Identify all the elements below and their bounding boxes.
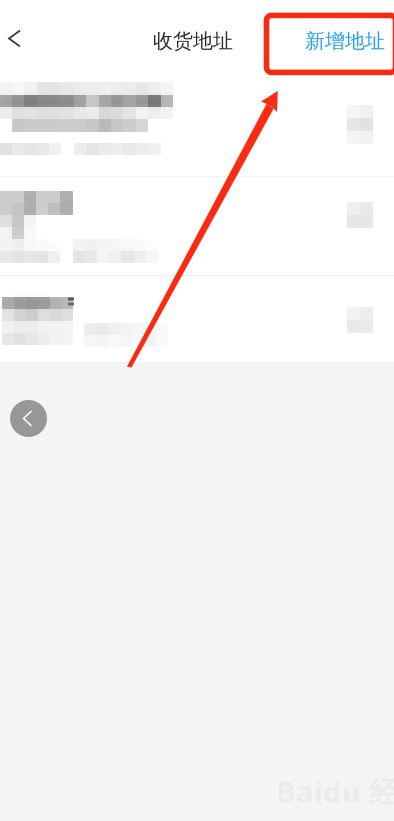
button[interactable] <box>0 276 394 362</box>
staticText: 收货地址 <box>153 29 233 53</box>
staticText: 新增地址 <box>305 29 385 53</box>
button[interactable] <box>0 82 394 176</box>
button[interactable]: Back <box>10 400 47 437</box>
button[interactable] <box>0 177 394 275</box>
button[interactable]: 返回 <box>0 16 34 60</box>
staticText: Baidu 经验 <box>276 772 394 811</box>
button[interactable]: 新增地址 <box>297 19 393 63</box>
